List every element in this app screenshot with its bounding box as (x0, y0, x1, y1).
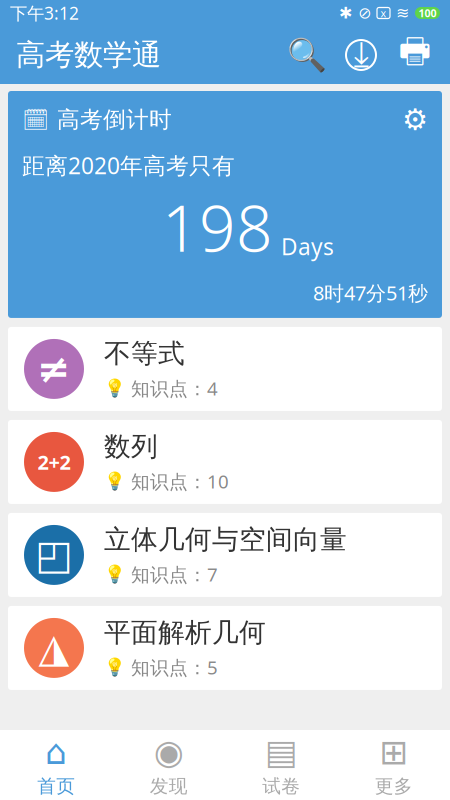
button[interactable]: 2+2 (8, 420, 442, 504)
staticText: 💡 (104, 471, 126, 491)
staticText: 100 (418, 6, 436, 20)
staticText: 立体几何与空间向量 (104, 523, 347, 556)
staticText: ◉ (154, 732, 184, 772)
staticText: 试卷 (262, 775, 300, 798)
staticText: ◰ (35, 532, 73, 578)
staticText: ▤ (265, 732, 298, 772)
staticText: ⚙ (402, 103, 428, 136)
staticText: 高考倒计时 (57, 106, 172, 133)
staticText: ≋ (396, 4, 409, 22)
staticText: ⊘ (358, 4, 371, 22)
staticText: 数列 (104, 430, 158, 463)
button[interactable]: 🗓 (8, 91, 442, 318)
staticText: 8时47分51秒 (313, 279, 428, 306)
staticText: x (380, 6, 386, 20)
staticText: ⤓ (353, 38, 368, 72)
button[interactable]: ▤ (225, 732, 337, 798)
button[interactable]: 下载 (334, 28, 388, 82)
staticText: 下午3:12 (10, 1, 79, 24)
staticText: ✱ (339, 4, 352, 22)
staticText: ⊞ (379, 732, 408, 772)
button[interactable]: ◮ (8, 606, 442, 690)
staticText: ⌂ (45, 732, 67, 772)
staticText: 🗓 (22, 107, 49, 132)
staticText: 2+2 (37, 449, 70, 475)
staticText: ≠ (37, 346, 71, 392)
staticText: 首页 (37, 775, 75, 798)
button[interactable]: ◉ (112, 732, 225, 798)
staticText: 🔍 (287, 37, 327, 73)
staticText: ◮ (38, 625, 69, 671)
button[interactable]: ◰ (8, 513, 442, 597)
button[interactable]: ⌂ (0, 732, 112, 798)
staticText: 不等式 (104, 337, 185, 370)
staticText: 平面解析几何 (104, 616, 266, 649)
staticText: 发现 (150, 775, 188, 798)
staticText: Days (281, 231, 334, 261)
staticText: 更多 (375, 775, 413, 798)
staticText: 💡 (104, 657, 126, 677)
staticText: 知识点：4 (131, 376, 218, 401)
staticText: 198 (162, 184, 273, 269)
staticText: 🖶 (398, 26, 431, 84)
button[interactable]: ≠ (8, 327, 442, 411)
button[interactable]: ⊞ (337, 732, 450, 798)
staticText: 高考数学通 (16, 37, 161, 73)
staticText: 💡 (104, 378, 126, 398)
button[interactable]: 打印 (388, 28, 442, 82)
staticText: 知识点：7 (131, 562, 218, 587)
staticText: 距离2020年高考只有 (22, 150, 235, 180)
button[interactable]: 搜索 (280, 28, 334, 82)
staticText: 知识点：10 (131, 469, 229, 494)
staticText: 知识点：5 (131, 655, 218, 680)
staticText: 💡 (104, 564, 126, 584)
